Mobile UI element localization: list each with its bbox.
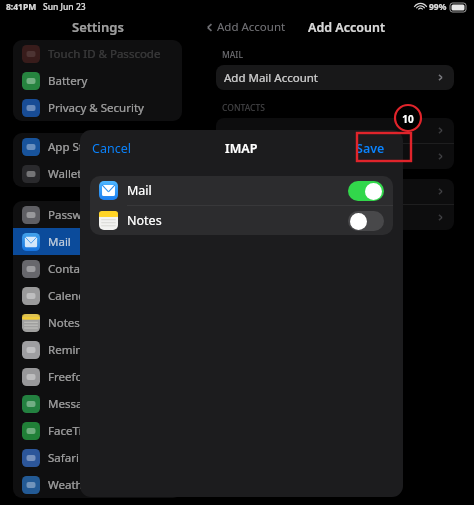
button[interactable]: Save [346,135,395,162]
staticText: Add Mail Account [224,70,319,86]
button[interactable]: Cancel [80,134,143,163]
staticText: Notes [127,212,162,229]
staticText: MAIL [222,49,243,61]
staticText: IMAP [225,140,258,157]
staticText: Sun Jun 23 [43,1,86,13]
button[interactable]: Notes [13,309,182,336]
staticText: Passwords [48,207,106,223]
button[interactable]: Back [204,19,286,35]
button[interactable]: App Store [13,133,182,160]
staticText: Notes [48,315,80,331]
staticText: Touch ID & Passcode [48,46,161,62]
button[interactable]: On [348,181,384,201]
staticText: Messages [48,396,102,412]
staticText: Save [356,140,385,157]
staticText: Settings [72,18,124,36]
staticText: Cancel [92,140,131,157]
staticText: Add Account [308,19,385,36]
button[interactable]: Wallet [13,160,182,187]
button[interactable]: Weather [13,471,182,498]
staticText: Battery [48,73,88,89]
button[interactable]: Notes [90,206,393,235]
staticText: Mail [127,182,152,199]
staticText: Weather [48,477,94,493]
staticText: CONTACTS [222,102,265,114]
staticText: 8:41PM [6,1,37,13]
staticText: Add Account [217,19,286,35]
staticText: 99% [429,1,447,13]
staticText: Safari [48,450,79,466]
staticText: FaceTime [48,423,100,439]
button[interactable]: Battery [13,67,182,94]
button[interactable] [216,205,454,230]
staticText: Freeform [48,369,98,385]
button[interactable]: Reminders [13,336,182,363]
staticText: Reminders [48,342,107,358]
button[interactable]: Mail [90,176,393,205]
button[interactable]: Privacy & Security [13,94,182,121]
staticText: Privacy & Security [48,100,144,116]
button[interactable] [216,118,454,143]
button[interactable]: Touch ID & Passcode [13,40,182,67]
button[interactable]: Passwords [13,201,182,228]
button[interactable]: Freeform [13,363,182,390]
button[interactable]: FaceTime [13,417,182,444]
button[interactable]: Calendar [13,282,182,309]
button[interactable] [216,179,454,204]
staticText: Mail [48,234,71,250]
button[interactable]: Messages [13,390,182,417]
staticText: Contacts [48,261,96,277]
button[interactable]: Safari [13,444,182,471]
staticText: App Store [48,139,101,155]
button[interactable]: Add Mail Account [216,65,454,90]
staticText: Calendar [48,288,97,304]
button[interactable]: Mail [13,228,182,255]
button[interactable]: Off [348,211,384,231]
button[interactable] [216,144,454,169]
staticText: Wallet [48,166,82,182]
button[interactable]: Contacts [13,255,182,282]
staticText: 10 [402,112,414,126]
